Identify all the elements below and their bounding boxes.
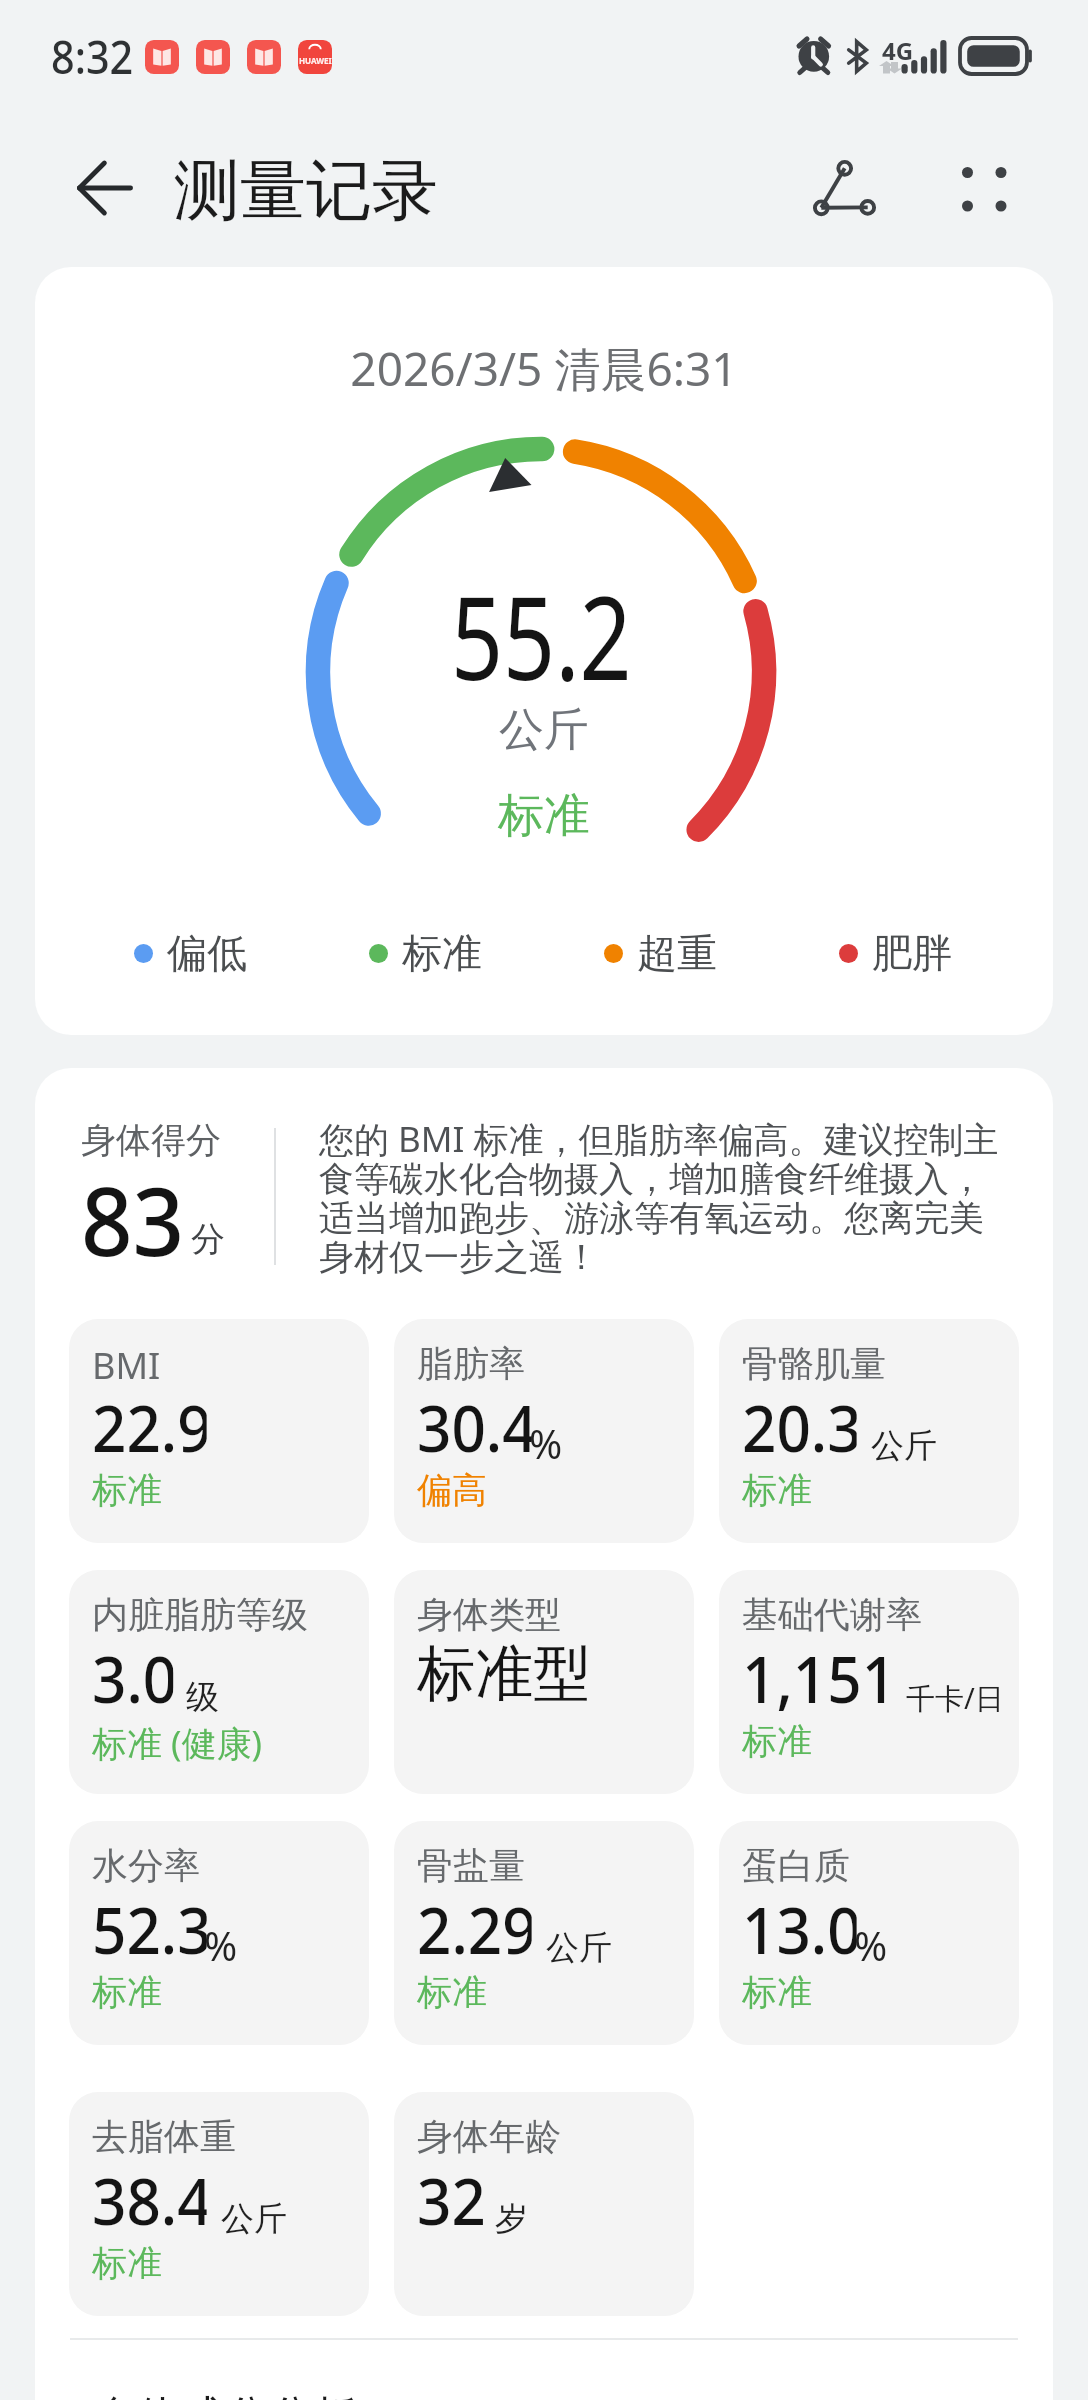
staticText: 标准 (92, 2241, 162, 2285)
staticText: 8:32 (51, 26, 134, 87)
button[interactable]: 骨骼肌量 (719, 1319, 1019, 1543)
button[interactable]: 内脏脂肪等级 (69, 1570, 369, 1794)
staticText: 32 (417, 2158, 483, 2244)
button[interactable]: 身体年龄 (394, 2092, 694, 2316)
staticText: 13.0 (742, 1887, 857, 1973)
staticText: 身体类型 (417, 1592, 561, 1637)
staticText: 标准 (健康) (92, 1719, 263, 1767)
staticText: 偏低 (167, 928, 247, 978)
staticText: 30.4 (417, 1385, 532, 1471)
staticText: BMI (92, 1341, 161, 1390)
button[interactable]: 2026/3/5 清晨6:31 (35, 267, 1053, 1035)
staticText: 公斤 (221, 2198, 287, 2240)
staticText: % (204, 1918, 238, 1972)
staticText: 公斤 (546, 1927, 612, 1969)
staticText: % (529, 1416, 563, 1470)
staticText: 标准 (742, 1468, 812, 1512)
button[interactable]: Share (801, 145, 891, 235)
staticText: 肥胖 (872, 928, 952, 978)
staticText: 1,151 (742, 1636, 890, 1722)
button[interactable]: 身体类型 (394, 1570, 694, 1794)
staticText: 身体年龄 (417, 2114, 561, 2159)
staticText: 4G (882, 34, 914, 67)
staticText: 千卡/日 (906, 1678, 1004, 1718)
button[interactable]: BMI (69, 1319, 369, 1543)
button[interactable]: Back (60, 143, 150, 233)
staticText: 偏高 (417, 1468, 487, 1512)
staticText: 标准 (417, 1970, 487, 2014)
staticText: 超重 (637, 928, 717, 978)
staticText: 基础代谢率 (742, 1592, 922, 1637)
staticText: 分 (191, 1218, 225, 1261)
button[interactable]: 基础代谢率 (719, 1570, 1019, 1794)
button[interactable]: 脂肪率 (394, 1319, 694, 1543)
staticText: 2.29 (417, 1887, 532, 1973)
staticText: 去脂体重 (92, 2114, 236, 2159)
staticText: 2026/3/5 清晨6:31 (35, 337, 1053, 400)
staticText: 身体成分分析 (93, 2390, 357, 2400)
staticText: 骨骼肌量 (742, 1341, 886, 1386)
button[interactable]: 骨盐量 (394, 1821, 694, 2045)
staticText: HUAWEI (299, 55, 332, 66)
staticText: 公斤 (35, 702, 1053, 759)
staticText: 岁 (495, 2198, 528, 2240)
staticText: 您的 BMI 标准，但脂肪率偏高。建议控制主食等碳水化合物摄入，增加膳食纤维摄入… (319, 1115, 1011, 1280)
staticText: 蛋白质 (742, 1843, 850, 1888)
staticText: 公斤 (871, 1425, 937, 1467)
staticText: 3.0 (92, 1636, 173, 1722)
staticText: 水分率 (92, 1843, 200, 1888)
staticText: 级 (186, 1676, 219, 1718)
staticText: 38.4 (92, 2158, 207, 2244)
staticText: 身体得分 (81, 1118, 221, 1162)
button[interactable]: 蛋白质 (719, 1821, 1019, 2045)
staticText: 脂肪率 (417, 1341, 525, 1386)
button[interactable]: More options (939, 144, 1029, 234)
staticText: 标准 (742, 1970, 812, 2014)
staticText: 内脏脂肪等级 (92, 1592, 308, 1637)
staticText: 52.3 (92, 1887, 207, 1973)
staticText: 骨盐量 (417, 1843, 525, 1888)
staticText: 标准型 (417, 1636, 587, 1712)
button[interactable]: 水分率 (69, 1821, 369, 2045)
staticText: 标准 (402, 928, 482, 978)
staticText: 标准 (742, 1719, 812, 1763)
staticText: 22.9 (92, 1385, 207, 1471)
staticText: 标准 (35, 787, 1053, 845)
staticText: 20.3 (742, 1385, 857, 1471)
staticText: 55.2 (451, 556, 632, 714)
staticText: % (854, 1918, 888, 1972)
staticText: 标准 (92, 1468, 162, 1512)
staticText: 测量记录 (174, 149, 438, 232)
staticText: 标准 (92, 1970, 162, 2014)
button[interactable]: 去脂体重 (69, 2092, 369, 2316)
staticText: 83 (81, 1156, 185, 1284)
